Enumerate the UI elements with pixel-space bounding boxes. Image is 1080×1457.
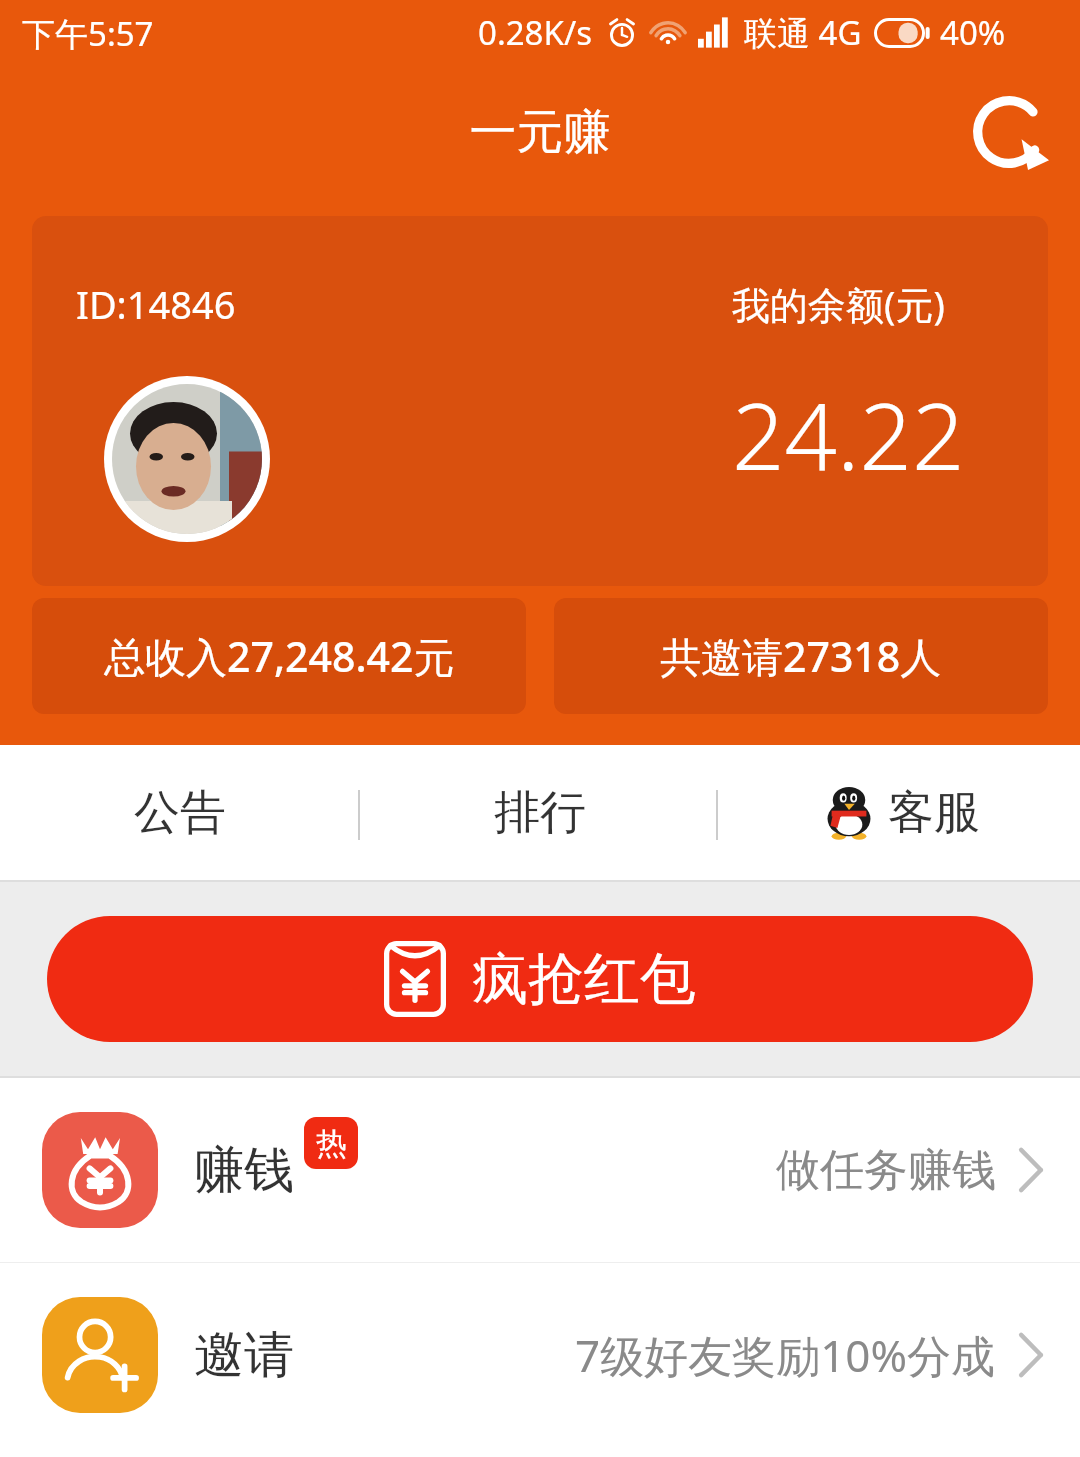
button[interactable]: 共邀请27318人 [554,598,1048,714]
staticText: 赚钱 [194,1139,294,1202]
button[interactable]: 排行 [360,745,720,880]
staticText: 一元赚 [0,103,1080,162]
button[interactable]: 赚钱 [0,1078,1080,1262]
staticText: 总收入27,248.42元 [104,628,455,684]
staticText: 邀请 [194,1324,294,1387]
staticText: 0.28K/s [478,10,592,55]
button[interactable]: 疯抢红包 [47,916,1033,1042]
staticText: 我的余额(元) [732,278,945,330]
staticText: 联通 4G [744,10,862,55]
staticText: 热 [316,1124,347,1163]
button[interactable]: Avatar [104,376,270,542]
button[interactable]: 客服 [720,745,1080,880]
staticText: 下午5:57 [22,11,154,56]
staticText: 7级好友奖励10%分成 [575,1325,996,1385]
button[interactable]: 公告 [0,745,360,880]
staticText: 排行 [494,784,586,842]
button[interactable]: 总收入27,248.42元 [32,598,526,714]
staticText: 40% [940,10,1006,55]
staticText: 疯抢红包 [472,944,696,1015]
staticText: 公告 [134,784,226,842]
staticText: 客服 [888,784,980,842]
staticText: ID:14846 [76,278,236,330]
staticText: 24.22 [732,372,965,497]
staticText: 做任务赚钱 [776,1143,996,1198]
button[interactable]: Refresh [965,88,1053,176]
button[interactable]: ID:14846 [32,216,1048,586]
button[interactable]: 邀请 [0,1263,1080,1447]
staticText: 共邀请27318人 [660,628,942,684]
